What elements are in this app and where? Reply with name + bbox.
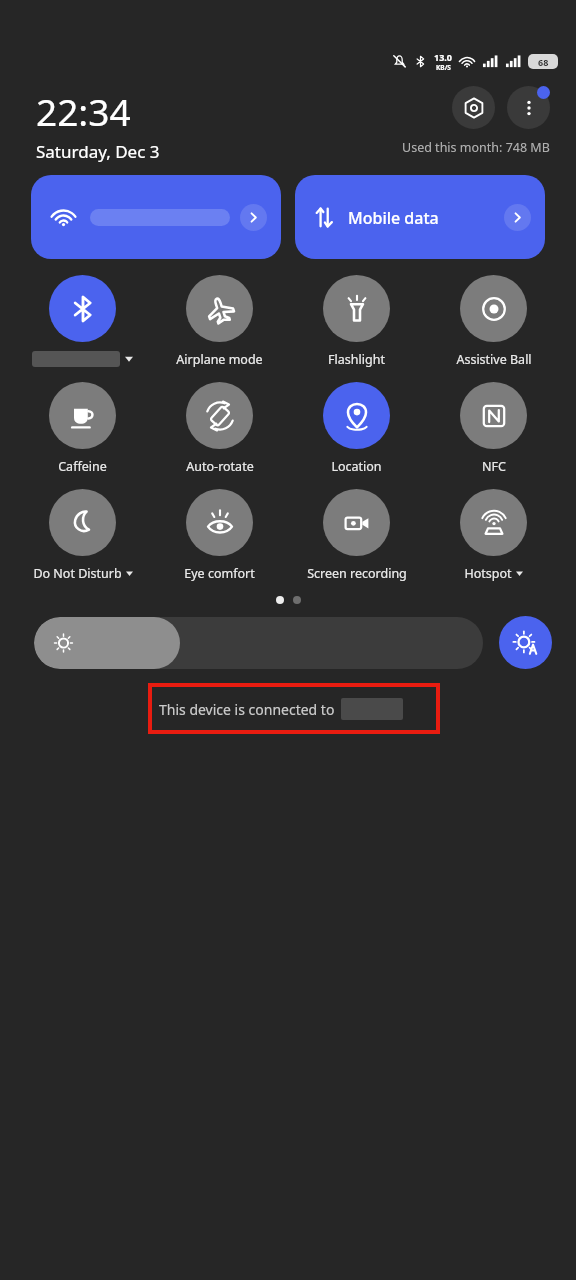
staticText: Do Not Disturb — [33, 565, 122, 582]
button[interactable]: Caffeine — [14, 382, 151, 475]
staticText: Auto-rotate — [186, 458, 254, 475]
button[interactable] — [31, 175, 281, 259]
staticText: Eye comfort — [184, 565, 255, 582]
button[interactable]: Flashlight — [288, 275, 425, 368]
staticText: Caffeine — [58, 458, 107, 475]
button[interactable]: Screen recording — [288, 489, 425, 582]
staticText: Hotspot — [464, 565, 512, 582]
staticText: 13.0 — [434, 51, 452, 63]
button[interactable]: Settings — [452, 86, 495, 129]
staticText: Assistive Ball — [456, 351, 532, 368]
staticText: 22:34 — [36, 86, 131, 136]
staticText: Saturday, Dec 3 — [36, 140, 160, 163]
button[interactable]: Assistive Ball — [425, 275, 562, 368]
staticText: 68 — [538, 56, 549, 68]
staticText: Location — [331, 458, 382, 475]
staticText: Flashlight — [328, 351, 385, 368]
button[interactable]: Hotspot — [425, 489, 562, 582]
staticText: Screen recording — [307, 565, 407, 582]
button[interactable]: Auto brightness — [499, 616, 552, 669]
button[interactable]: Airplane mode — [151, 275, 288, 368]
button[interactable]: This device is connected to — [148, 683, 440, 734]
staticText: Mobile data — [348, 207, 439, 229]
button[interactable]: Do Not Disturb — [14, 489, 151, 582]
staticText: This device is connected to — [159, 700, 335, 719]
button[interactable]: NFC — [425, 382, 562, 475]
staticText: Used this month: 748 MB — [402, 139, 550, 156]
button[interactable]: Eye comfort — [151, 489, 288, 582]
button[interactable]: Brightness — [34, 617, 483, 669]
button[interactable]: Mobile data — [295, 175, 545, 259]
button[interactable]: Bluetooth — [14, 275, 151, 367]
button[interactable]: Location — [288, 382, 425, 475]
button[interactable]: Auto-rotate — [151, 382, 288, 475]
staticText: KB/S — [436, 63, 451, 72]
button[interactable]: More options — [507, 86, 550, 129]
staticText: NFC — [482, 458, 506, 475]
staticText: Airplane mode — [176, 351, 263, 368]
